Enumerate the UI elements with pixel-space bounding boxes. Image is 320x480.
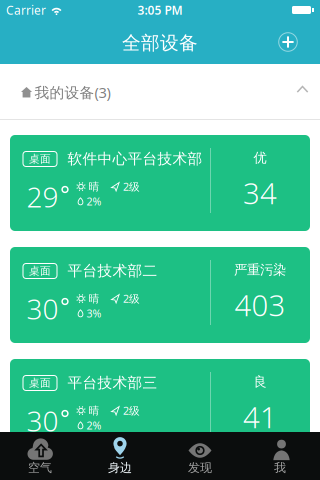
button[interactable]: 桌面 (10, 359, 310, 455)
staticText: 403 (234, 285, 285, 324)
staticText: 2级 (123, 291, 140, 306)
staticText: 我 (274, 460, 286, 475)
staticText: 29 (26, 178, 58, 215)
staticText: 2% (86, 194, 101, 208)
staticText: 桌面 (29, 376, 51, 389)
staticText: Carrier (6, 2, 46, 18)
staticText: 发现 (188, 460, 212, 475)
staticText: 30 (26, 290, 58, 327)
staticText: 晴 (88, 404, 99, 417)
staticText: 身边 (108, 460, 132, 475)
staticText: 全部设备 (122, 31, 198, 54)
staticText: 严重污染 (234, 262, 286, 278)
staticText: 我的设备(3) (34, 82, 110, 102)
staticText: 2% (86, 418, 101, 432)
button[interactable]: 桌面 (10, 247, 310, 343)
staticText: 良 (253, 374, 266, 390)
staticText: 34 (243, 173, 277, 212)
button[interactable] (278, 32, 298, 52)
staticText: 平台技术部三 (67, 374, 157, 392)
staticText: 晴 (88, 292, 99, 305)
button[interactable]: 桌面 (10, 135, 310, 231)
button[interactable]: 我的设备(3) (0, 64, 320, 120)
staticText: 桌面 (29, 264, 51, 277)
button[interactable]: 身边 (80, 432, 160, 480)
staticText: 优 (253, 150, 266, 166)
staticText: 41 (243, 397, 277, 436)
staticText: 桌面 (29, 152, 51, 165)
staticText: 3% (86, 306, 101, 320)
button[interactable]: 发现 (160, 432, 240, 480)
staticText: 软件中心平台技术部 (67, 150, 202, 168)
button[interactable]: 空气 (0, 432, 80, 480)
staticText: 平台技术部二 (67, 262, 157, 280)
staticText: 晴 (88, 180, 99, 193)
button[interactable]: 我 (240, 432, 320, 480)
staticText: 3:05 PM (137, 2, 182, 18)
staticText: 空气 (28, 460, 52, 475)
staticText: 2级 (123, 179, 140, 194)
staticText: 30 (26, 402, 58, 439)
staticText: 2级 (123, 403, 140, 418)
